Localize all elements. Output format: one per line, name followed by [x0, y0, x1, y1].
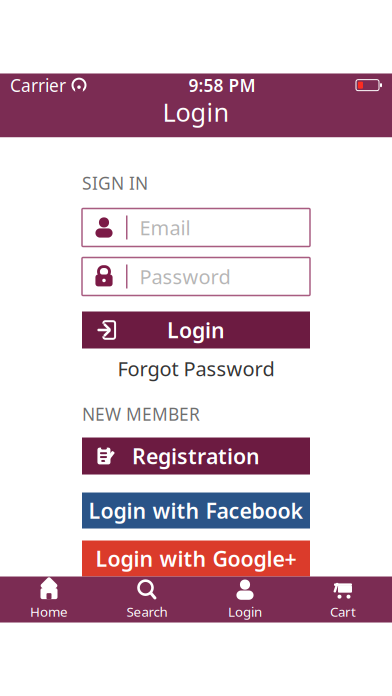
button[interactable]: Forgot Password	[82, 358, 310, 378]
button[interactable]: Home	[0, 576, 98, 622]
button[interactable]: Login with Facebook	[82, 492, 310, 528]
staticText: Search	[126, 603, 167, 620]
staticText: NEW MEMBER	[82, 402, 200, 425]
staticText: 9:58 PM	[188, 74, 255, 97]
staticText: Forgot Password	[117, 355, 274, 382]
staticText: Login	[228, 603, 262, 620]
staticText: Login	[167, 316, 225, 344]
button[interactable]: Login with Google+	[82, 540, 310, 576]
staticText: Carrier	[10, 74, 66, 97]
button[interactable]: Login	[82, 311, 310, 348]
button[interactable]: Cart	[294, 576, 392, 622]
staticText: Login	[162, 95, 229, 129]
button[interactable]: Registration	[82, 437, 310, 474]
staticText: Password	[139, 263, 230, 290]
staticText: Registration	[132, 442, 260, 470]
staticText: Login with Facebook	[88, 496, 303, 525]
staticText: Home	[30, 603, 68, 620]
staticText: SIGN IN	[82, 171, 148, 194]
staticText: Login with Google+	[95, 544, 296, 573]
staticText: Cart	[330, 603, 356, 620]
button[interactable]: Search	[98, 576, 196, 622]
staticText: Email	[139, 214, 190, 241]
button[interactable]: Login	[196, 576, 294, 622]
